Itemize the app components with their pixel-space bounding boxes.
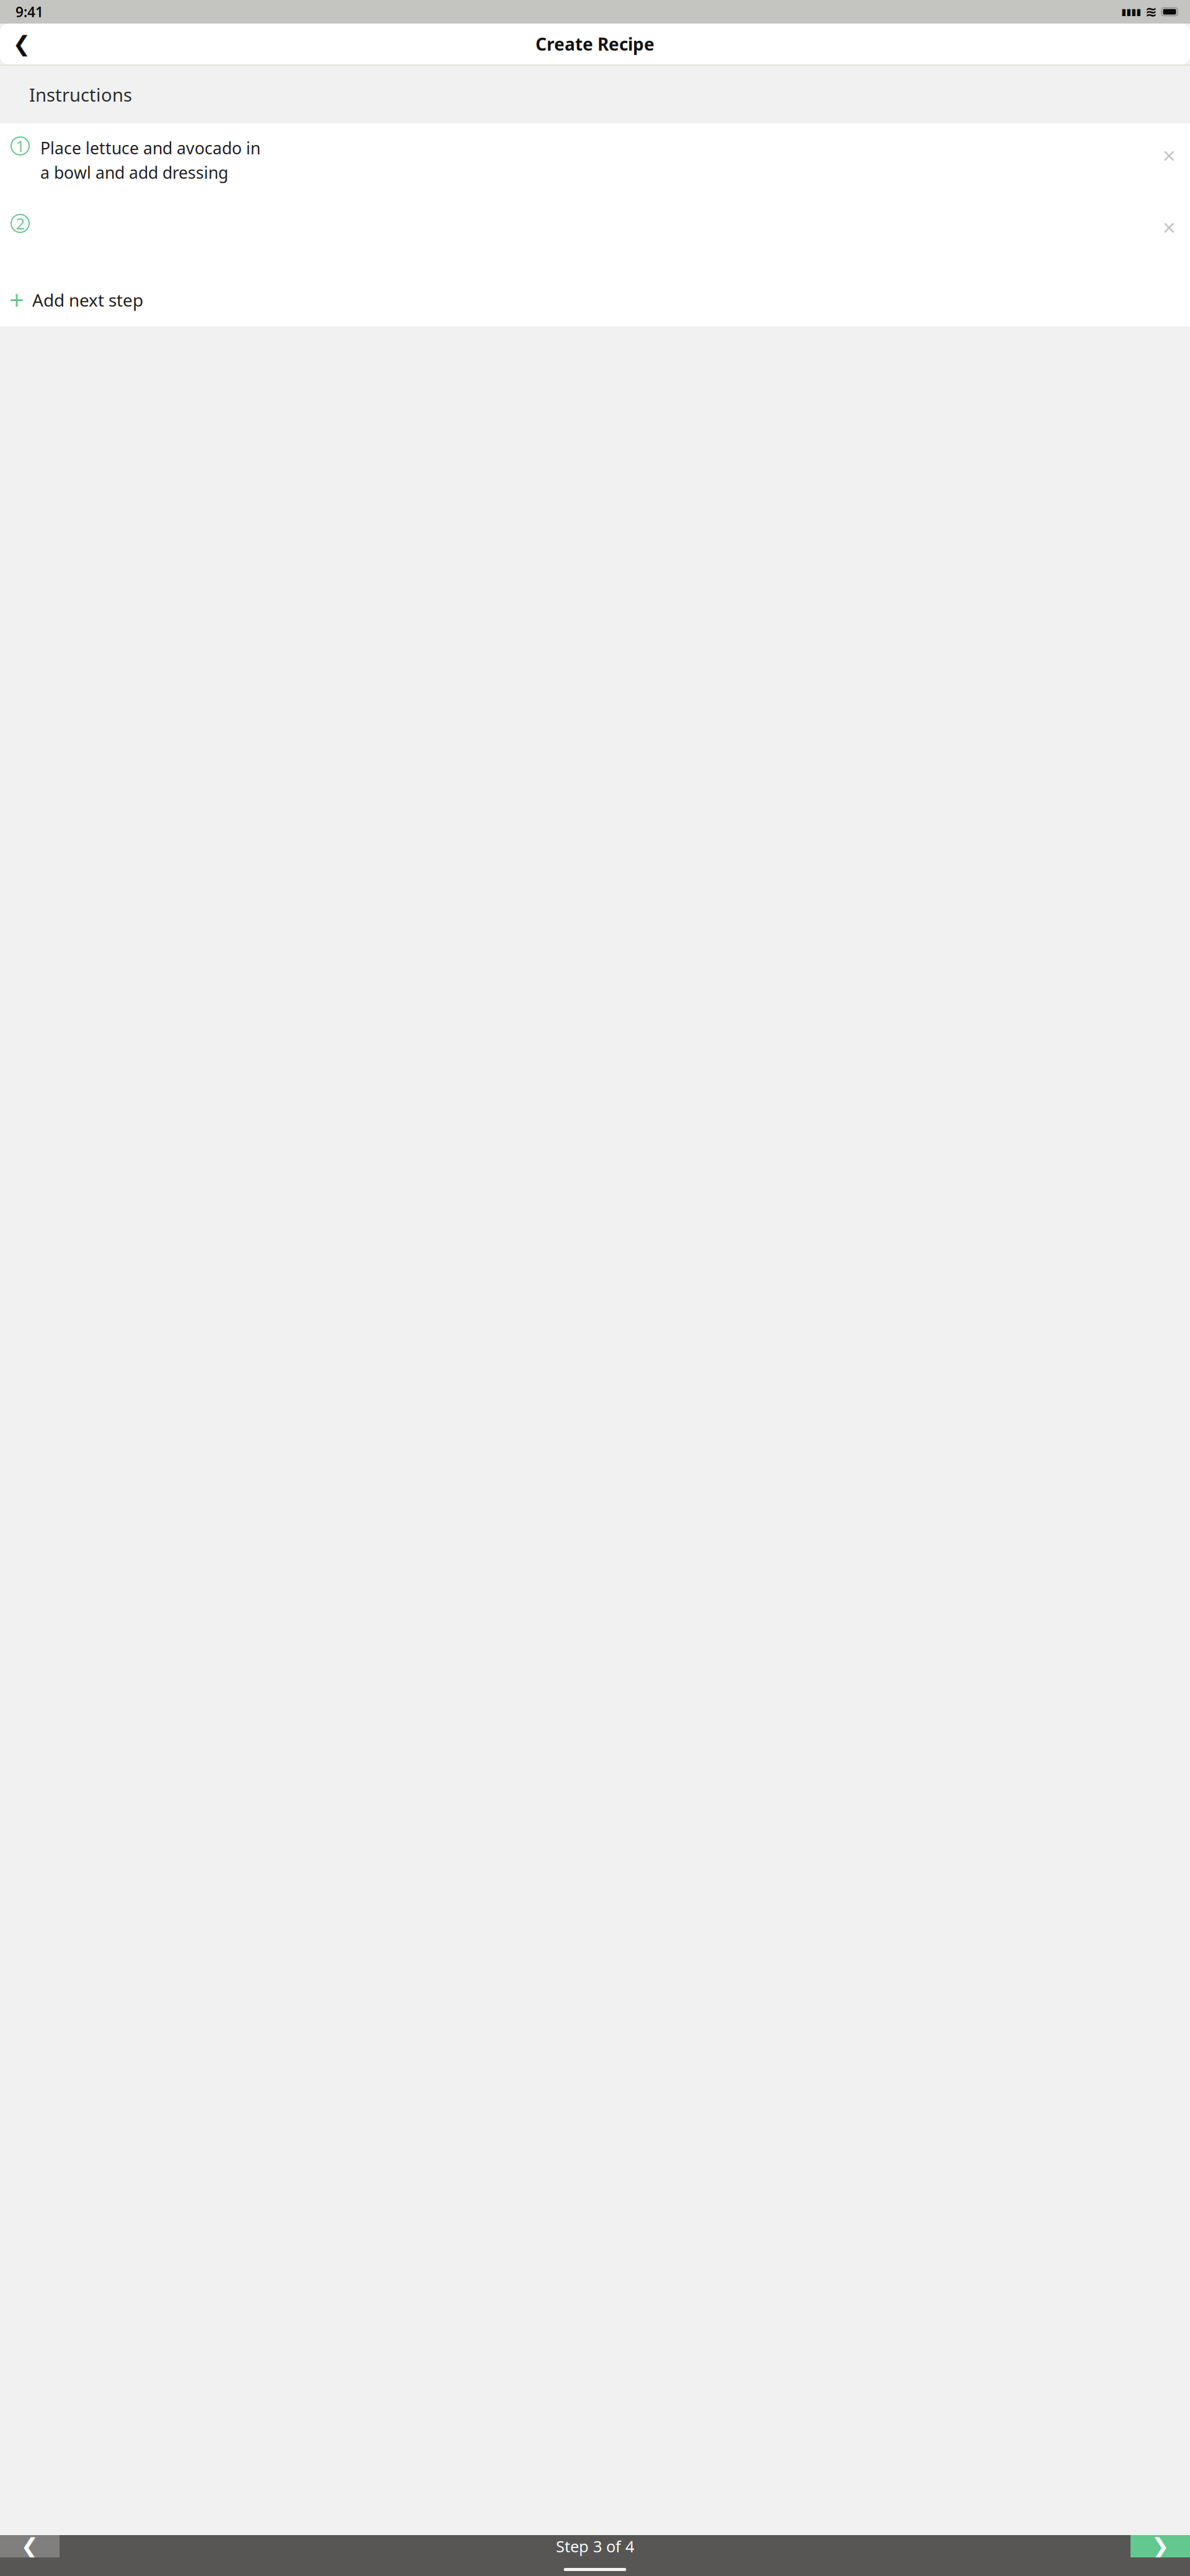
staticText: a bowl and add dressing xyxy=(40,161,228,183)
button[interactable]: Previous step xyxy=(0,2535,59,2557)
staticText: ≋ xyxy=(1145,4,1157,20)
staticText: ❮ xyxy=(21,2534,39,2558)
staticText: Step 3 of 4 xyxy=(556,2536,634,2557)
staticText: ❯ xyxy=(1151,2534,1169,2558)
button[interactable]: Back xyxy=(5,27,38,61)
staticText: 9:41 xyxy=(15,2,43,21)
staticText: 2 xyxy=(16,213,24,234)
staticText: Add next step xyxy=(32,288,143,311)
staticText: Place lettuce and avocado in xyxy=(40,137,260,159)
staticText: ✕ xyxy=(1162,218,1176,238)
staticText: Instructions xyxy=(29,82,132,107)
staticText: + xyxy=(9,283,24,317)
staticText: Create Recipe xyxy=(535,32,654,56)
staticText: ❮ xyxy=(13,32,31,56)
button[interactable]: + xyxy=(0,273,1190,327)
button[interactable]: Delete step 2 xyxy=(1155,214,1183,242)
button[interactable]: Next step xyxy=(1130,2535,1190,2557)
staticText: 1 xyxy=(16,136,24,156)
button[interactable]: Delete step 1 xyxy=(1155,143,1183,170)
staticText: ✕ xyxy=(1162,146,1176,166)
staticText: ▮▮▮▮ xyxy=(1121,7,1141,17)
